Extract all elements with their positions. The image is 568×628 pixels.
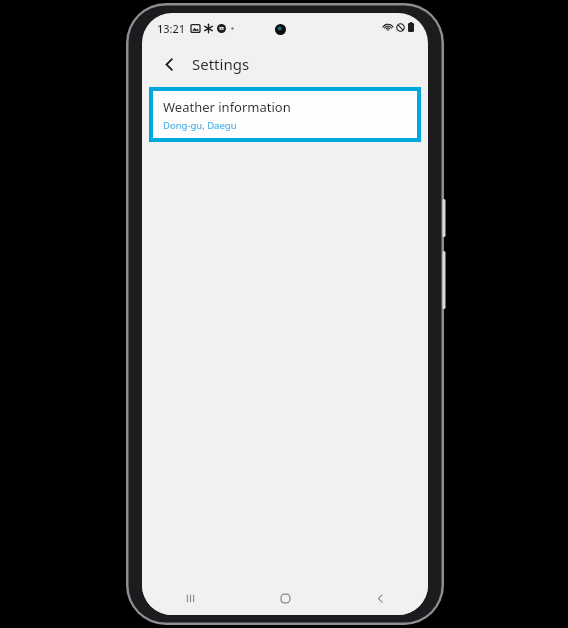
staticText: 13:21 <box>157 21 186 36</box>
button[interactable]: Home <box>238 581 333 615</box>
button[interactable]: Weather information <box>153 91 417 138</box>
button[interactable]: Recents <box>142 581 238 615</box>
staticText: Weather information <box>163 98 291 116</box>
button[interactable]: Back <box>152 47 186 81</box>
staticText: Settings <box>192 54 250 74</box>
button[interactable]: Back <box>333 581 428 615</box>
staticText: Dong-gu, Daegu <box>163 119 237 132</box>
